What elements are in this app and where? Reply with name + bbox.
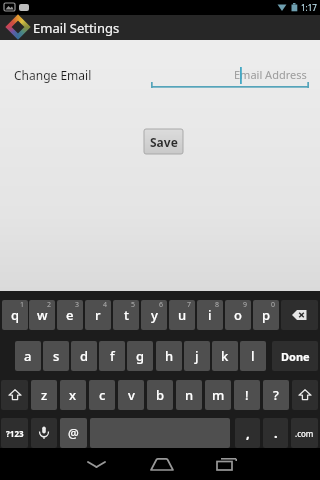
- button[interactable]: ,: [235, 418, 260, 448]
- button[interactable]: o: [225, 300, 251, 330]
- staticText: 7: [187, 300, 192, 310]
- button[interactable]: h: [156, 341, 182, 371]
- staticText: w: [37, 306, 48, 324]
- button[interactable]: n: [176, 380, 202, 410]
- staticText: a: [24, 347, 32, 365]
- button[interactable]: f: [99, 341, 125, 371]
- staticText: g: [136, 347, 145, 365]
- staticText: k: [221, 347, 229, 365]
- staticText: o: [234, 306, 242, 324]
- staticText: ?123: [6, 428, 24, 439]
- button[interactable]: .: [263, 418, 288, 448]
- staticText: 1: [20, 300, 25, 310]
- staticText: r: [95, 306, 101, 324]
- staticText: b: [156, 386, 165, 404]
- staticText: ,: [246, 424, 250, 442]
- button[interactable]: .com: [291, 418, 318, 448]
- button[interactable]: [80, 448, 112, 480]
- staticText: h: [165, 347, 174, 365]
- button[interactable]: Done: [272, 341, 318, 371]
- staticText: @: [68, 425, 79, 441]
- staticText: d: [80, 347, 89, 365]
- staticText: q: [11, 306, 20, 324]
- staticText: u: [178, 306, 187, 324]
- staticText: v: [128, 386, 135, 404]
- staticText: f: [110, 347, 115, 365]
- staticText: 0: [271, 300, 276, 310]
- button[interactable]: m: [205, 380, 231, 410]
- button[interactable]: k: [212, 341, 238, 371]
- staticText: l: [251, 347, 255, 365]
- button[interactable]: ?: [263, 380, 289, 410]
- staticText: y: [151, 306, 158, 324]
- staticText: .: [274, 424, 278, 442]
- button[interactable]: Save: [144, 129, 183, 154]
- staticText: p: [262, 306, 271, 324]
- button[interactable]: i: [197, 300, 223, 330]
- staticText: c: [99, 386, 106, 404]
- button[interactable]: @: [60, 418, 87, 448]
- staticText: t: [124, 306, 129, 324]
- staticText: i: [208, 306, 212, 324]
- staticText: 4: [103, 300, 108, 310]
- staticText: Save: [150, 134, 178, 150]
- button[interactable]: p: [253, 300, 279, 330]
- staticText: Change Email: [14, 67, 92, 83]
- button[interactable]: s: [43, 341, 69, 371]
- button[interactable]: c: [89, 380, 115, 410]
- button[interactable]: a: [15, 341, 41, 371]
- staticText: Email Settings: [33, 19, 120, 37]
- button[interactable]: l: [240, 341, 266, 371]
- staticText: m: [212, 386, 225, 404]
- button[interactable]: x: [60, 380, 86, 410]
- staticText: 9: [243, 300, 248, 310]
- staticText: s: [53, 347, 60, 365]
- staticText: Done: [281, 349, 310, 364]
- staticText: 3: [75, 300, 80, 310]
- staticText: 5: [131, 300, 136, 310]
- button[interactable]: j: [184, 341, 210, 371]
- button[interactable]: d: [71, 341, 97, 371]
- staticText: n: [185, 386, 194, 404]
- button[interactable]: Email Address: [151, 60, 309, 88]
- button[interactable]: ?123: [1, 418, 28, 448]
- staticText: 6: [159, 300, 164, 310]
- staticText: 2: [47, 300, 52, 310]
- button[interactable]: z: [31, 380, 57, 410]
- staticText: !: [245, 386, 249, 404]
- button[interactable]: !: [234, 380, 260, 410]
- staticText: 1:17: [301, 2, 317, 13]
- staticText: 8: [215, 300, 220, 310]
- button[interactable]: q: [2, 300, 28, 330]
- staticText: z: [41, 386, 48, 404]
- button[interactable]: t: [113, 300, 139, 330]
- button[interactable]: [281, 300, 318, 330]
- staticText: ?: [273, 386, 279, 404]
- button[interactable]: g: [127, 341, 153, 371]
- button[interactable]: v: [118, 380, 144, 410]
- button[interactable]: [292, 380, 318, 410]
- button[interactable]: e: [57, 300, 83, 330]
- button[interactable]: [146, 448, 178, 480]
- staticText: e: [66, 306, 74, 324]
- button[interactable]: r: [85, 300, 111, 330]
- button[interactable]: w: [29, 300, 55, 330]
- button[interactable]: b: [147, 380, 173, 410]
- button[interactable]: [210, 448, 242, 480]
- staticText: .com: [295, 428, 314, 439]
- staticText: Email Address: [234, 67, 307, 82]
- button[interactable]: y: [141, 300, 167, 330]
- button[interactable]: [1, 380, 28, 410]
- button[interactable]: [31, 418, 57, 448]
- staticText: j: [195, 347, 199, 365]
- staticText: x: [69, 386, 77, 404]
- button[interactable]: u: [169, 300, 195, 330]
